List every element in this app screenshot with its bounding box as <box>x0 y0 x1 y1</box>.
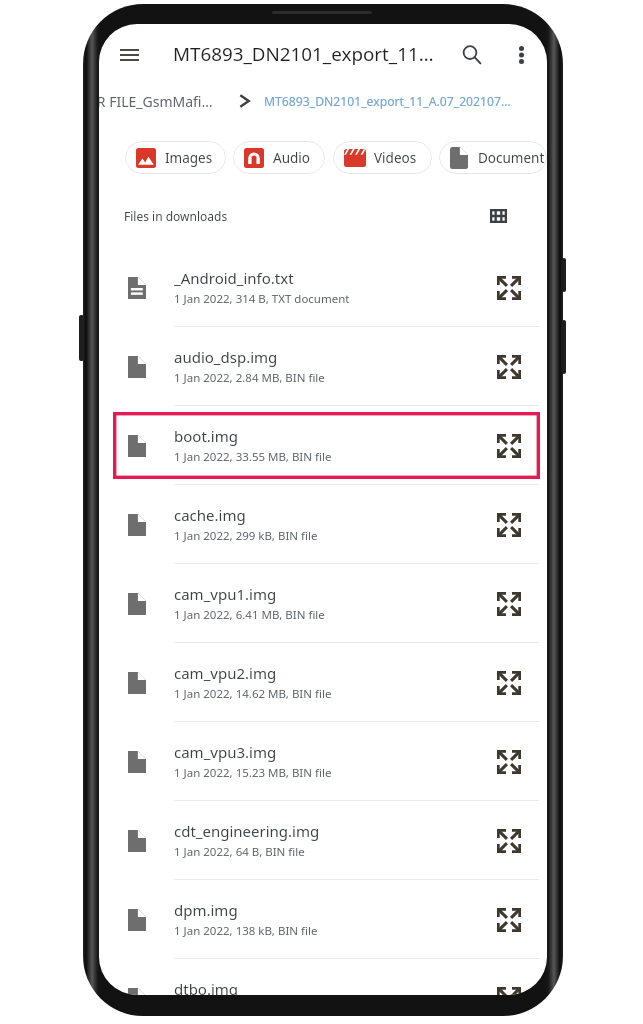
staticText: 1 Jan 2022, 138 kB, BIN file <box>174 923 318 939</box>
button[interactable]: More options <box>497 31 545 79</box>
staticText: 1 Jan 2022, 314 B, TXT document <box>174 291 350 307</box>
staticText: cam_vpu1.img <box>174 584 277 604</box>
staticText: Audio <box>273 149 310 167</box>
staticText: 1 Jan 2022, 14.62 MB, BIN file <box>174 686 332 702</box>
button[interactable]: Videos <box>333 141 432 174</box>
staticText: Files in downloads <box>124 208 228 224</box>
staticText: 1 Jan 2022, 2.84 MB, BIN file <box>174 370 325 386</box>
button[interactable]: cam_vpu1.img <box>99 564 547 643</box>
button[interactable]: MT6893_DN2101_export_11_A.07_202107… <box>264 93 511 110</box>
staticText: Videos <box>374 149 417 167</box>
button[interactable]: Navigation menu <box>105 31 153 79</box>
staticText: cam_vpu3.img <box>174 742 277 762</box>
staticText: Documents <box>478 149 547 167</box>
button[interactable]: cache.img <box>99 485 547 564</box>
button[interactable]: cam_vpu2.img <box>99 643 547 722</box>
button[interactable]: cdt_engineering.img <box>99 801 547 880</box>
staticText: Images <box>165 149 213 167</box>
staticText: cam_vpu2.img <box>174 663 277 683</box>
button[interactable]: dtbo.img <box>99 959 547 995</box>
staticText: 1 Jan 2022, 15.23 MB, BIN file <box>174 765 332 781</box>
staticText: 1 Jan 2022, 33.55 MB, BIN file <box>174 449 332 465</box>
staticText: 1 Jan 2022, 6.41 MB, BIN file <box>174 607 325 623</box>
staticText: 1 Jan 2022, 299 kB, BIN file <box>174 528 318 544</box>
staticText: MT6893_DN2101_export_11… <box>173 41 434 67</box>
button[interactable]: Documents <box>439 141 547 174</box>
button[interactable]: boot.img <box>99 406 547 485</box>
button[interactable]: Search <box>448 31 496 79</box>
button[interactable]: _Android_info.txt <box>99 248 547 327</box>
button[interactable]: dpm.img <box>99 880 547 959</box>
button[interactable]: ER FILE_GsmMafi… <box>99 92 213 111</box>
button[interactable]: cam_vpu3.img <box>99 722 547 801</box>
staticText: audio_dsp.img <box>174 347 278 367</box>
staticText: 1 Jan 2022, 64 B, BIN file <box>174 844 305 860</box>
staticText: dpm.img <box>174 900 238 920</box>
staticText: cache.img <box>174 505 246 525</box>
button[interactable]: Images <box>125 141 226 174</box>
button[interactable]: Audio <box>233 141 325 174</box>
staticText: _Android_info.txt <box>174 268 294 288</box>
staticText: boot.img <box>174 426 238 446</box>
button[interactable]: Switch to grid view <box>482 200 514 232</box>
staticText: cdt_engineering.img <box>174 821 320 841</box>
staticText: dtbo.img <box>174 979 239 995</box>
button[interactable]: audio_dsp.img <box>99 327 547 406</box>
